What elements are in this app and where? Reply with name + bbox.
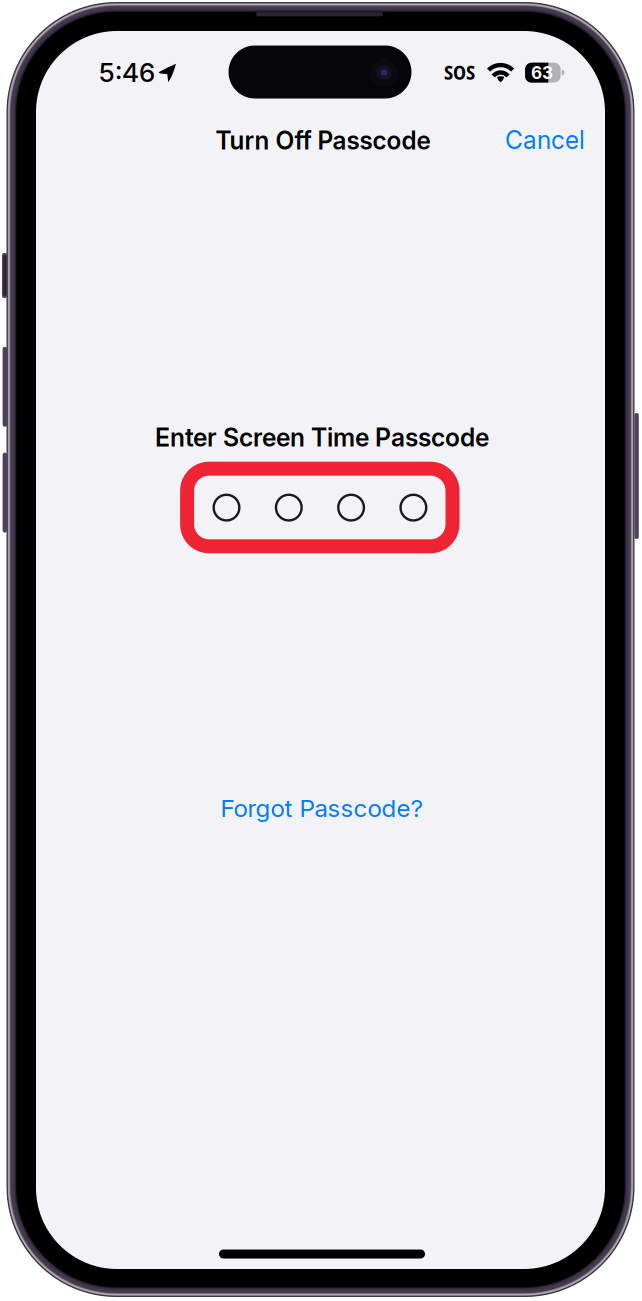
staticText: 63	[531, 62, 553, 83]
staticText: 5:46	[99, 57, 155, 88]
staticText: Forgot Passcode?	[220, 793, 423, 823]
staticText: SOS	[444, 58, 475, 86]
staticText: Enter Screen Time Passcode	[155, 422, 489, 452]
button[interactable]: Cancel	[493, 117, 597, 163]
button[interactable]: Forgot Passcode?	[207, 784, 437, 832]
staticText: Cancel	[505, 125, 585, 155]
staticText: Turn Off Passcode	[215, 126, 430, 155]
